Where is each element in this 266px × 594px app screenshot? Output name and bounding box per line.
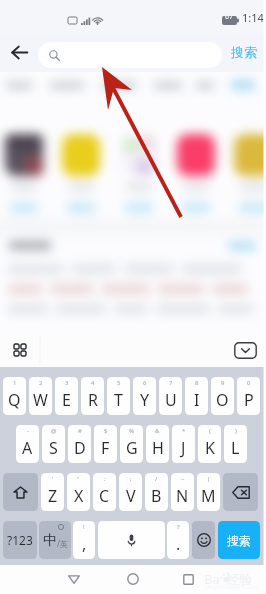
staticText: L [231, 437, 240, 459]
button[interactable]: Shift [3, 473, 38, 511]
staticText: J [181, 437, 186, 459]
button[interactable]: $ [94, 425, 117, 463]
staticText: 0 [247, 379, 251, 387]
staticText: * [182, 427, 186, 435]
button[interactable]: " [67, 473, 90, 511]
staticText: 1 [13, 379, 17, 387]
button[interactable]: * [172, 425, 195, 463]
staticText: F [101, 437, 110, 459]
staticText: Z [48, 485, 58, 507]
staticText: ) [235, 427, 237, 435]
staticText: R [88, 389, 98, 411]
button[interactable]: ? [167, 521, 189, 559]
staticText: 8 [195, 379, 199, 387]
button[interactable]: Home [119, 565, 147, 593]
button[interactable]: 6 [133, 377, 156, 415]
button[interactable]: ) [224, 425, 247, 463]
staticText: N [176, 485, 189, 507]
staticText: V [126, 485, 136, 507]
staticText: 2 [39, 379, 43, 387]
button[interactable]: 1 [3, 377, 26, 415]
button[interactable]: Backspace [223, 473, 258, 511]
staticText: # [78, 427, 82, 435]
staticText: 中 [43, 532, 57, 550]
button[interactable]: 搜索 [218, 521, 260, 559]
button[interactable] [38, 42, 222, 68]
staticText: / [155, 475, 158, 483]
staticText: E [62, 389, 71, 411]
button[interactable]: ~ [171, 473, 194, 511]
button[interactable]: | [197, 473, 220, 511]
button[interactable]: 4 [81, 377, 104, 415]
button[interactable]: ! [73, 521, 95, 559]
button[interactable]: - [16, 425, 39, 463]
staticText: : [104, 475, 106, 483]
staticText: $ [104, 427, 108, 435]
staticText: 67 [225, 12, 234, 22]
staticText: Y [140, 389, 150, 411]
button[interactable]: Switch language [39, 521, 71, 559]
staticText: H [152, 437, 164, 459]
staticText: W [33, 389, 48, 411]
staticText: M [201, 485, 216, 507]
button[interactable]: Recents [174, 565, 202, 593]
staticText: % [129, 427, 134, 435]
button[interactable]: # [68, 425, 91, 463]
button[interactable]: ' [41, 473, 64, 511]
staticText: C [99, 485, 110, 507]
staticText: " [77, 475, 80, 483]
staticText: , [82, 533, 87, 555]
staticText: Q [8, 389, 21, 411]
staticText: B [151, 485, 162, 507]
button[interactable]: / [145, 473, 168, 511]
staticText: ! [83, 523, 85, 531]
button[interactable]: : [93, 473, 116, 511]
staticText: 7 [169, 379, 173, 387]
button[interactable]: ( [198, 425, 221, 463]
staticText: 5 [117, 379, 121, 387]
staticText: A [22, 437, 33, 459]
button[interactable]: & [146, 425, 169, 463]
staticText: K [205, 437, 215, 459]
button[interactable]: 5 [107, 377, 130, 415]
button[interactable]: @ [42, 425, 65, 463]
staticText: 搜索 [227, 533, 251, 548]
staticText: - [27, 427, 29, 435]
button[interactable]: Keyboard layouts [9, 339, 31, 361]
button[interactable]: % [120, 425, 143, 463]
staticText: Ba 经验 [204, 570, 253, 588]
staticText: . [176, 533, 181, 555]
button[interactable]: Hide keyboard [234, 342, 257, 359]
staticText: 9 [221, 379, 225, 387]
button[interactable]: 3 [55, 377, 78, 415]
staticText: 1:14 [242, 10, 264, 25]
button[interactable]: 7 [159, 377, 182, 415]
button[interactable]: ; [119, 473, 142, 511]
button[interactable]: 搜索 [231, 44, 257, 60]
button[interactable]: ?123 [3, 521, 37, 559]
button[interactable]: 9 [211, 377, 234, 415]
staticText: O [216, 389, 229, 411]
staticText: & [155, 427, 160, 435]
staticText: @ [51, 427, 57, 435]
staticText: ~ [181, 475, 185, 483]
button[interactable]: 8 [185, 377, 208, 415]
staticText: D [74, 437, 86, 459]
staticText: | [207, 475, 211, 483]
button[interactable]: 2 [29, 377, 52, 415]
staticText: jingyan.baidu.com [206, 583, 258, 591]
button[interactable]: Voice input [98, 521, 165, 559]
button[interactable]: 0 [237, 377, 260, 415]
staticText: ; [130, 475, 132, 483]
staticText: 6 [143, 379, 147, 387]
button[interactable]: Back [6, 39, 32, 65]
staticText: /英 [57, 538, 68, 549]
staticText: S [49, 437, 58, 459]
staticText: P [244, 389, 254, 411]
staticText: ' [52, 475, 54, 483]
staticText: ( [209, 427, 211, 435]
staticText: I [194, 389, 200, 411]
button[interactable]: Emoji [192, 521, 215, 559]
staticText: T [114, 389, 123, 411]
button[interactable]: Back [60, 565, 88, 593]
